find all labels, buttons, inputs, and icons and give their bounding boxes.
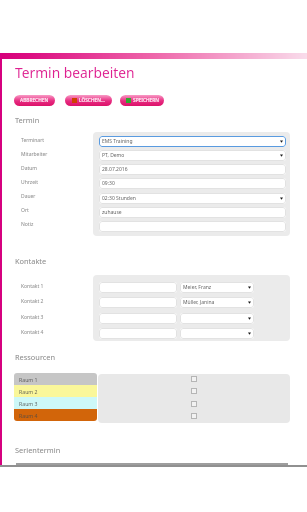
staticText: PT, Demo	[102, 152, 125, 159]
staticText: Raum 3	[19, 400, 38, 407]
staticText: Datum	[21, 165, 38, 172]
staticText: Termin bearbeiten	[15, 63, 135, 82]
staticText: ABBRECHEN	[20, 97, 49, 104]
staticText: Termin	[15, 115, 40, 125]
button[interactable]: Meier, Franz	[180, 282, 254, 293]
staticText: Kontakt 2	[21, 298, 44, 305]
button[interactable]	[99, 328, 177, 339]
staticText: Raum 1	[19, 376, 38, 383]
staticText: Raum 2	[19, 388, 38, 395]
button[interactable]: 02:30 Stunden	[99, 193, 286, 204]
staticText: Dauer	[21, 193, 36, 200]
button[interactable]	[180, 313, 254, 324]
staticText: Ressourcen	[15, 352, 56, 362]
staticText: Notiz	[21, 221, 34, 228]
button[interactable]	[99, 313, 177, 324]
staticText: Uhrzeit	[21, 179, 39, 186]
staticText: Kontakt 3	[21, 314, 44, 321]
button[interactable]: Raum 4	[14, 409, 97, 421]
button[interactable]: Müller, Janina	[180, 297, 254, 308]
staticText: Kontakt 4	[21, 329, 44, 336]
staticText: 09:30	[102, 180, 115, 187]
button[interactable]: EMS Training	[99, 136, 286, 147]
button[interactable]: 28.07.2016	[99, 164, 286, 175]
button[interactable]	[99, 221, 286, 232]
button[interactable]	[99, 282, 177, 293]
button[interactable]: SPEICHERN	[120, 95, 164, 106]
button[interactable]: PT, Demo	[99, 150, 286, 161]
staticText: zuhause	[102, 209, 122, 216]
button[interactable]: 09:30	[99, 178, 286, 189]
staticText: 02:30 Stunden	[102, 195, 136, 202]
button[interactable]	[99, 297, 177, 308]
staticText: EMS Training	[102, 138, 133, 145]
staticText: Müller, Janina	[183, 299, 215, 306]
staticText: Raum 4	[19, 412, 38, 419]
button[interactable]: ABBRECHEN	[14, 95, 55, 106]
staticText: Kontakt 1	[21, 283, 44, 290]
staticText: Terminart	[21, 137, 45, 144]
staticText: Meier, Franz	[183, 284, 212, 291]
button[interactable]: Raum 3	[14, 397, 97, 409]
button[interactable]: zuhause	[99, 207, 286, 218]
staticText: SPEICHERN	[133, 97, 159, 104]
staticText: 28.07.2016	[102, 166, 128, 173]
button[interactable]: Raum 2	[14, 385, 97, 397]
staticText: Ort	[21, 207, 29, 214]
button[interactable]: LÖSCHEN...	[65, 95, 112, 106]
button[interactable]: Raum 1	[14, 373, 97, 385]
staticText: Mitarbeiter	[21, 151, 48, 158]
staticText: LÖSCHEN...	[79, 97, 105, 104]
staticText: Serientermin	[15, 445, 61, 455]
button[interactable]	[180, 328, 254, 339]
staticText: Kontakte	[15, 256, 47, 266]
